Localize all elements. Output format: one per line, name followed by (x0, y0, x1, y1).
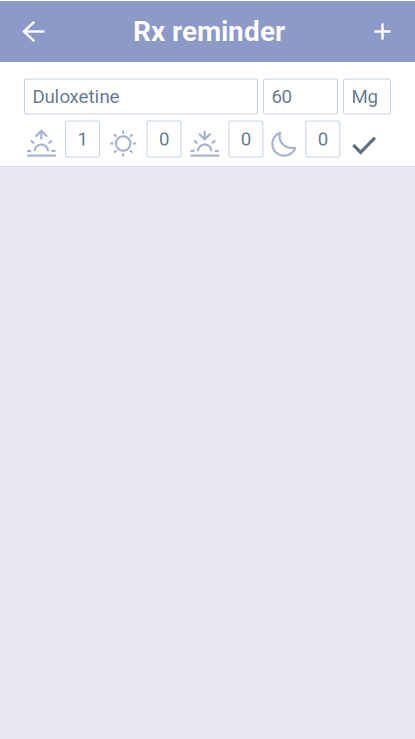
staticText: 0 (241, 128, 251, 150)
button[interactable]: 0 (229, 121, 263, 157)
staticText: Duloxetine (32, 86, 119, 107)
button[interactable]: Mg (343, 79, 390, 114)
staticText: 60 (271, 86, 291, 107)
staticText: Mg (351, 86, 377, 107)
staticText: 0 (159, 128, 169, 150)
button[interactable]: Add medication (350, 1, 415, 62)
button[interactable]: 0 (306, 121, 340, 157)
button[interactable]: 60 (263, 79, 337, 114)
staticText: Rx reminder (133, 15, 285, 48)
button[interactable]: Save medication (349, 121, 379, 157)
staticText: 1 (77, 128, 87, 150)
button[interactable]: Duloxetine (24, 79, 257, 114)
button[interactable]: 0 (147, 121, 181, 157)
staticText: 0 (318, 128, 328, 150)
button[interactable]: Back (0, 1, 68, 62)
button[interactable]: 1 (65, 121, 99, 157)
